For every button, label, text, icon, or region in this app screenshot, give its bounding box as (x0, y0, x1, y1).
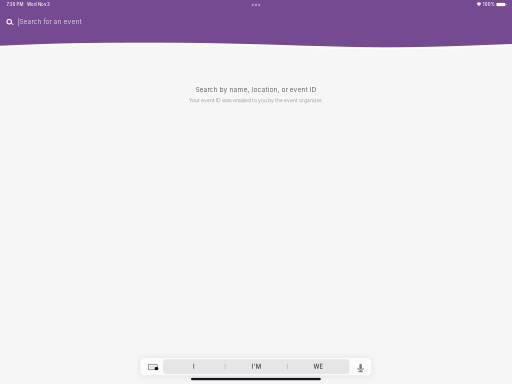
staticText: I (193, 363, 195, 370)
button[interactable]: WE (288, 359, 349, 374)
button[interactable]: Keyboard settings (140, 358, 163, 375)
button[interactable]: I'M (225, 359, 287, 374)
staticText: 100% (483, 2, 495, 7)
staticText: Search for an event (20, 18, 82, 25)
staticText: 7:38 PM (6, 2, 23, 7)
staticText: Wed Nov 3 (27, 2, 50, 7)
staticText: I'M (252, 363, 261, 370)
staticText: Your event ID was emailed to you by the … (189, 97, 323, 103)
button[interactable]: Dictate (349, 358, 371, 375)
staticText: Search by name, location, or event ID (195, 85, 316, 93)
staticText: WE (314, 363, 324, 370)
button[interactable]: I (163, 359, 225, 374)
